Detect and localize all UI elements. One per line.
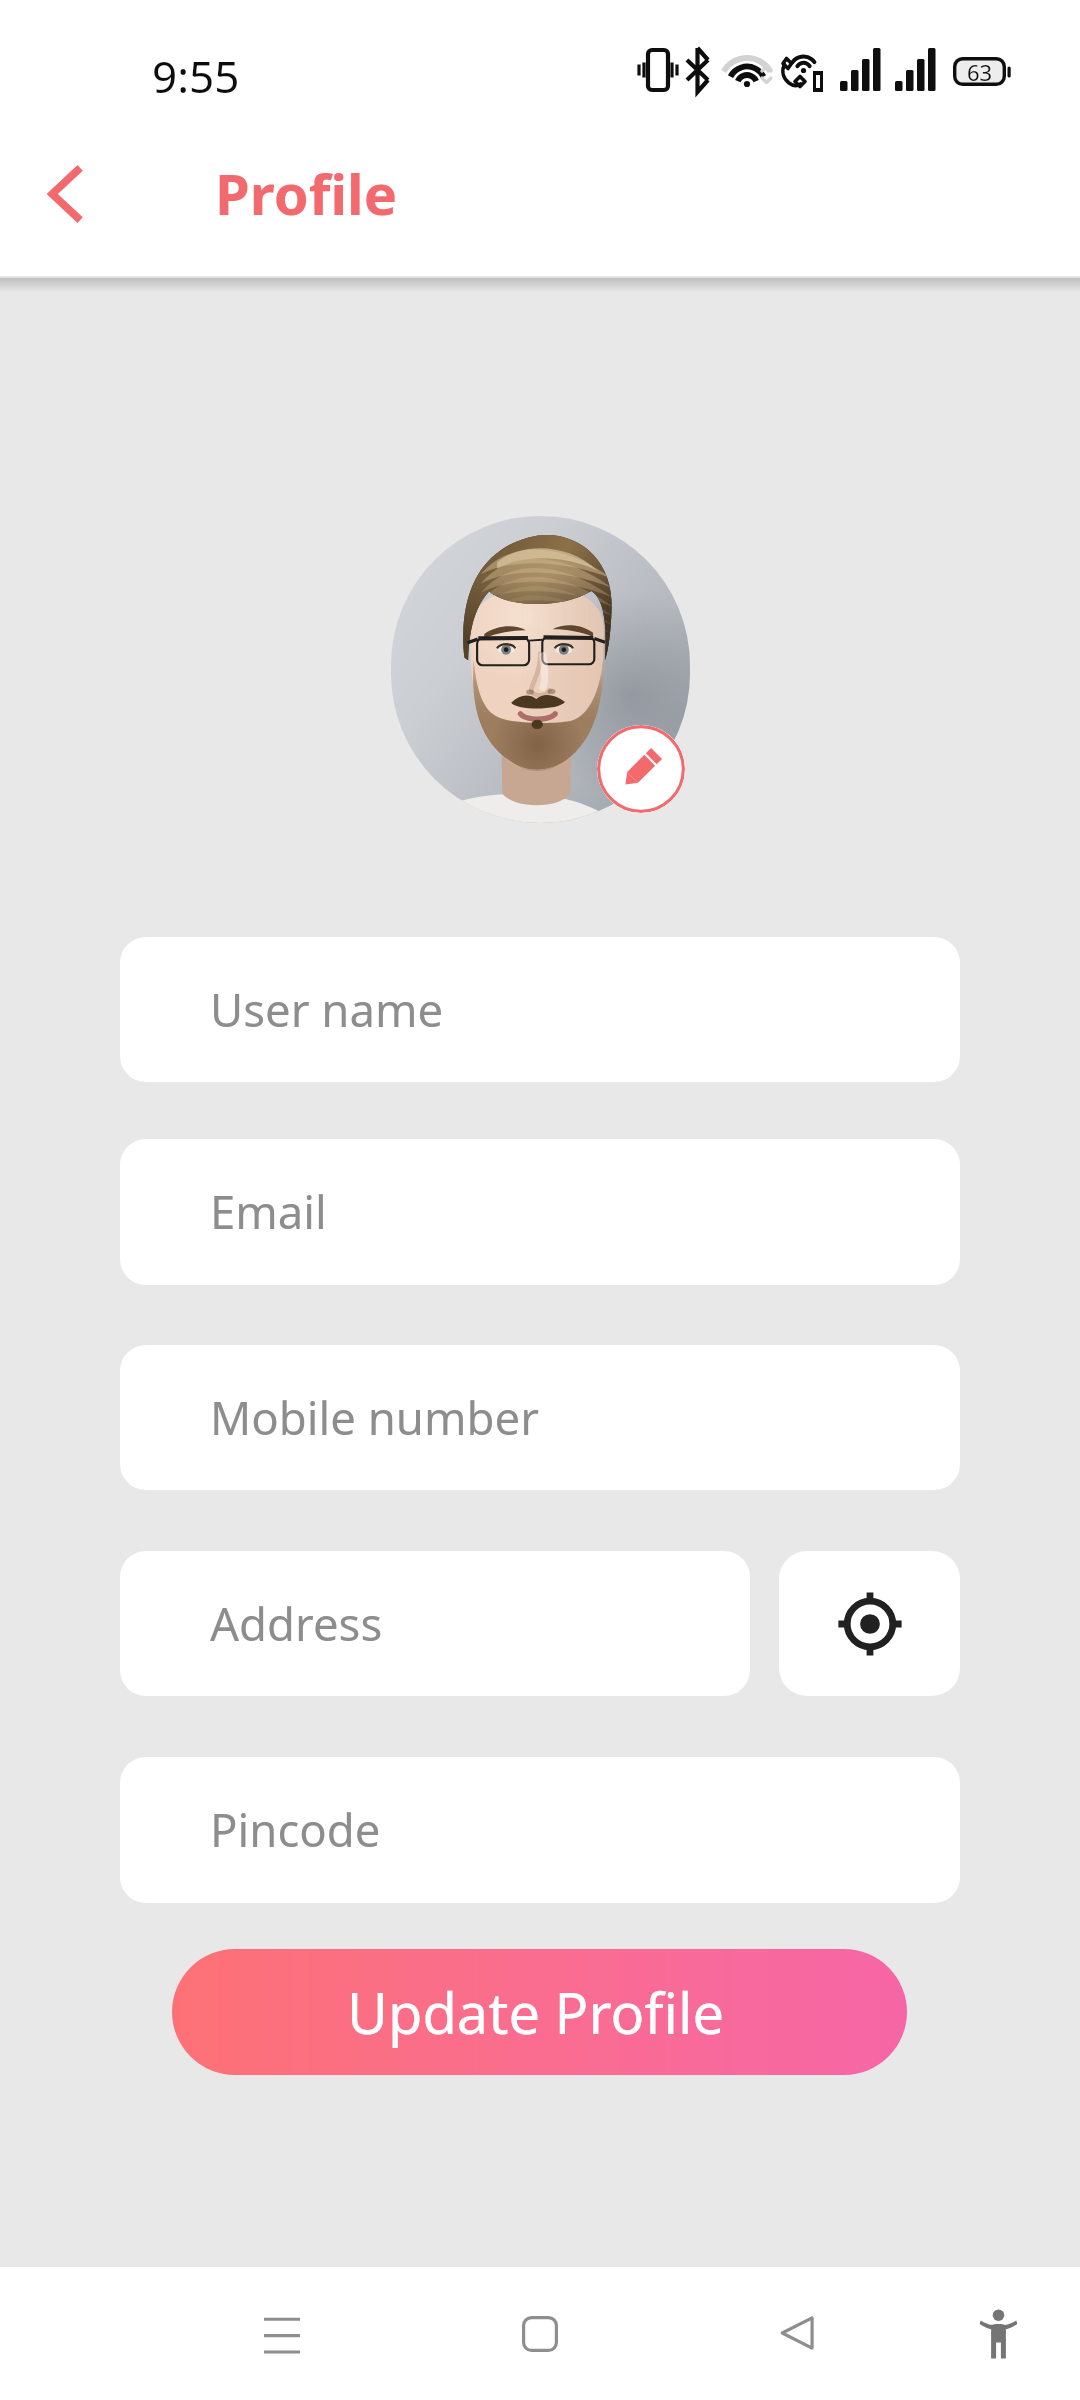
staticText: Pincode [210,1798,381,1860]
button[interactable]: User name [120,937,960,1082]
button[interactable]: Email [120,1139,960,1285]
button[interactable]: Back [749,2285,845,2381]
staticText: Update Profile [347,1974,725,2050]
button[interactable]: Mobile number [120,1345,960,1490]
button[interactable]: Back [17,146,114,242]
button[interactable]: Use current location [779,1551,960,1696]
button[interactable]: Pincode [120,1757,960,1903]
button[interactable]: Recents [234,2286,330,2382]
staticText: Mobile number [210,1386,539,1448]
staticText: Email [210,1180,327,1242]
button[interactable]: Profile photo [391,516,690,823]
button[interactable]: Edit profile photo [597,725,685,813]
staticText: User name [210,978,444,1040]
button[interactable]: Update Profile [172,1949,907,2075]
button[interactable]: Home [492,2286,588,2382]
staticText: Address [210,1592,383,1654]
staticText: 63 [967,57,993,86]
button[interactable]: Accessibility [962,2292,1035,2376]
button[interactable]: Address [120,1551,750,1696]
staticText: Profile [215,155,398,231]
staticText: 9:55 [152,46,240,106]
